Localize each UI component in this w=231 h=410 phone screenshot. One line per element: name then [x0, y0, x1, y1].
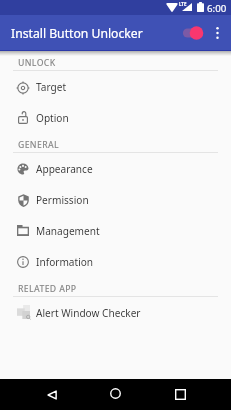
button[interactable]: Target: [0, 71, 231, 102]
staticText: Permission: [36, 193, 89, 207]
staticText: LTE: [179, 1, 187, 7]
button[interactable]: Home: [99, 379, 132, 410]
staticText: Target: [36, 80, 67, 94]
staticText: Option: [36, 111, 69, 125]
staticText: 6:00: [207, 2, 227, 15]
button[interactable]: Management: [0, 215, 231, 246]
button[interactable]: More options: [207, 18, 227, 48]
button[interactable]: Recents: [164, 379, 197, 410]
staticText: UNLOCK: [18, 57, 56, 69]
staticText: Appearance: [36, 162, 93, 176]
button[interactable]: Back: [35, 379, 68, 410]
staticText: Install Button Unlocker: [11, 25, 143, 42]
staticText: Alert Window Checker: [36, 306, 141, 320]
staticText: Management: [36, 224, 100, 238]
button[interactable]: Option: [0, 102, 231, 133]
staticText: RELATED APP: [18, 283, 77, 295]
button[interactable]: Permission: [0, 184, 231, 215]
staticText: Information: [36, 255, 94, 269]
button[interactable]: Information: [0, 246, 231, 277]
button[interactable]: Enable service: [181, 21, 205, 45]
button[interactable]: Appearance: [0, 153, 231, 184]
button[interactable]: Alert Window Checker: [0, 297, 231, 328]
staticText: GENERAL: [18, 139, 60, 151]
